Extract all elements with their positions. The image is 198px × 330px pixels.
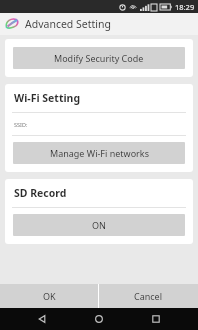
- staticText: Wi-Fi Setting: [14, 91, 81, 105]
- staticText: Manage Wi-Fi networks: [50, 147, 149, 159]
- staticText: Cancel: [134, 290, 163, 302]
- button[interactable]: ON: [13, 214, 185, 236]
- button[interactable]: OK: [0, 284, 98, 308]
- staticText: Modify Security Code: [54, 52, 144, 64]
- staticText: Advanced Setting: [25, 17, 111, 31]
- button[interactable]: Modify Security Code: [13, 47, 185, 69]
- staticText: OK: [43, 290, 56, 302]
- staticText: SSID:: [14, 121, 28, 128]
- button[interactable]: Manage Wi-Fi networks: [13, 142, 185, 164]
- staticText: ON: [92, 219, 106, 231]
- button[interactable]: Cancel: [99, 284, 198, 308]
- staticText: 18:29: [175, 2, 195, 12]
- staticText: SD Record: [14, 186, 67, 200]
- button[interactable]: Recent apps: [141, 308, 171, 330]
- button[interactable]: Home: [84, 308, 114, 330]
- button[interactable]: Back: [27, 308, 57, 330]
